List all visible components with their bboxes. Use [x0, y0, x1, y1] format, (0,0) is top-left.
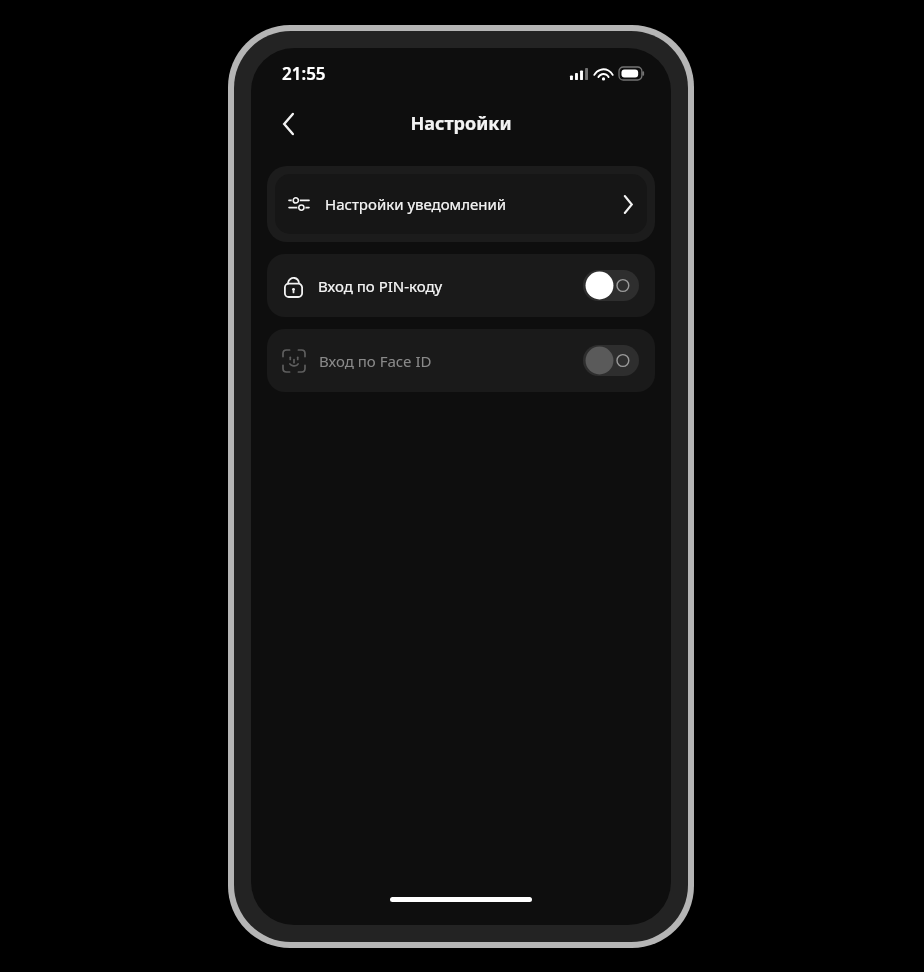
staticText: Настройки: [410, 111, 512, 136]
button[interactable]: Toggle: [583, 270, 639, 301]
button[interactable]: Настройки уведомлений: [267, 166, 655, 242]
staticText: Настройки уведомлений: [325, 194, 507, 214]
staticText: Вход по Face ID: [319, 351, 432, 371]
staticText: 21:55: [282, 62, 326, 85]
button[interactable]: Вход по PIN-коду: [267, 254, 655, 317]
button[interactable]: Back: [267, 102, 311, 146]
staticText: Вход по PIN-коду: [318, 276, 443, 296]
button[interactable]: Вход по Face ID: [267, 329, 655, 392]
button[interactable]: Toggle: [583, 345, 639, 376]
